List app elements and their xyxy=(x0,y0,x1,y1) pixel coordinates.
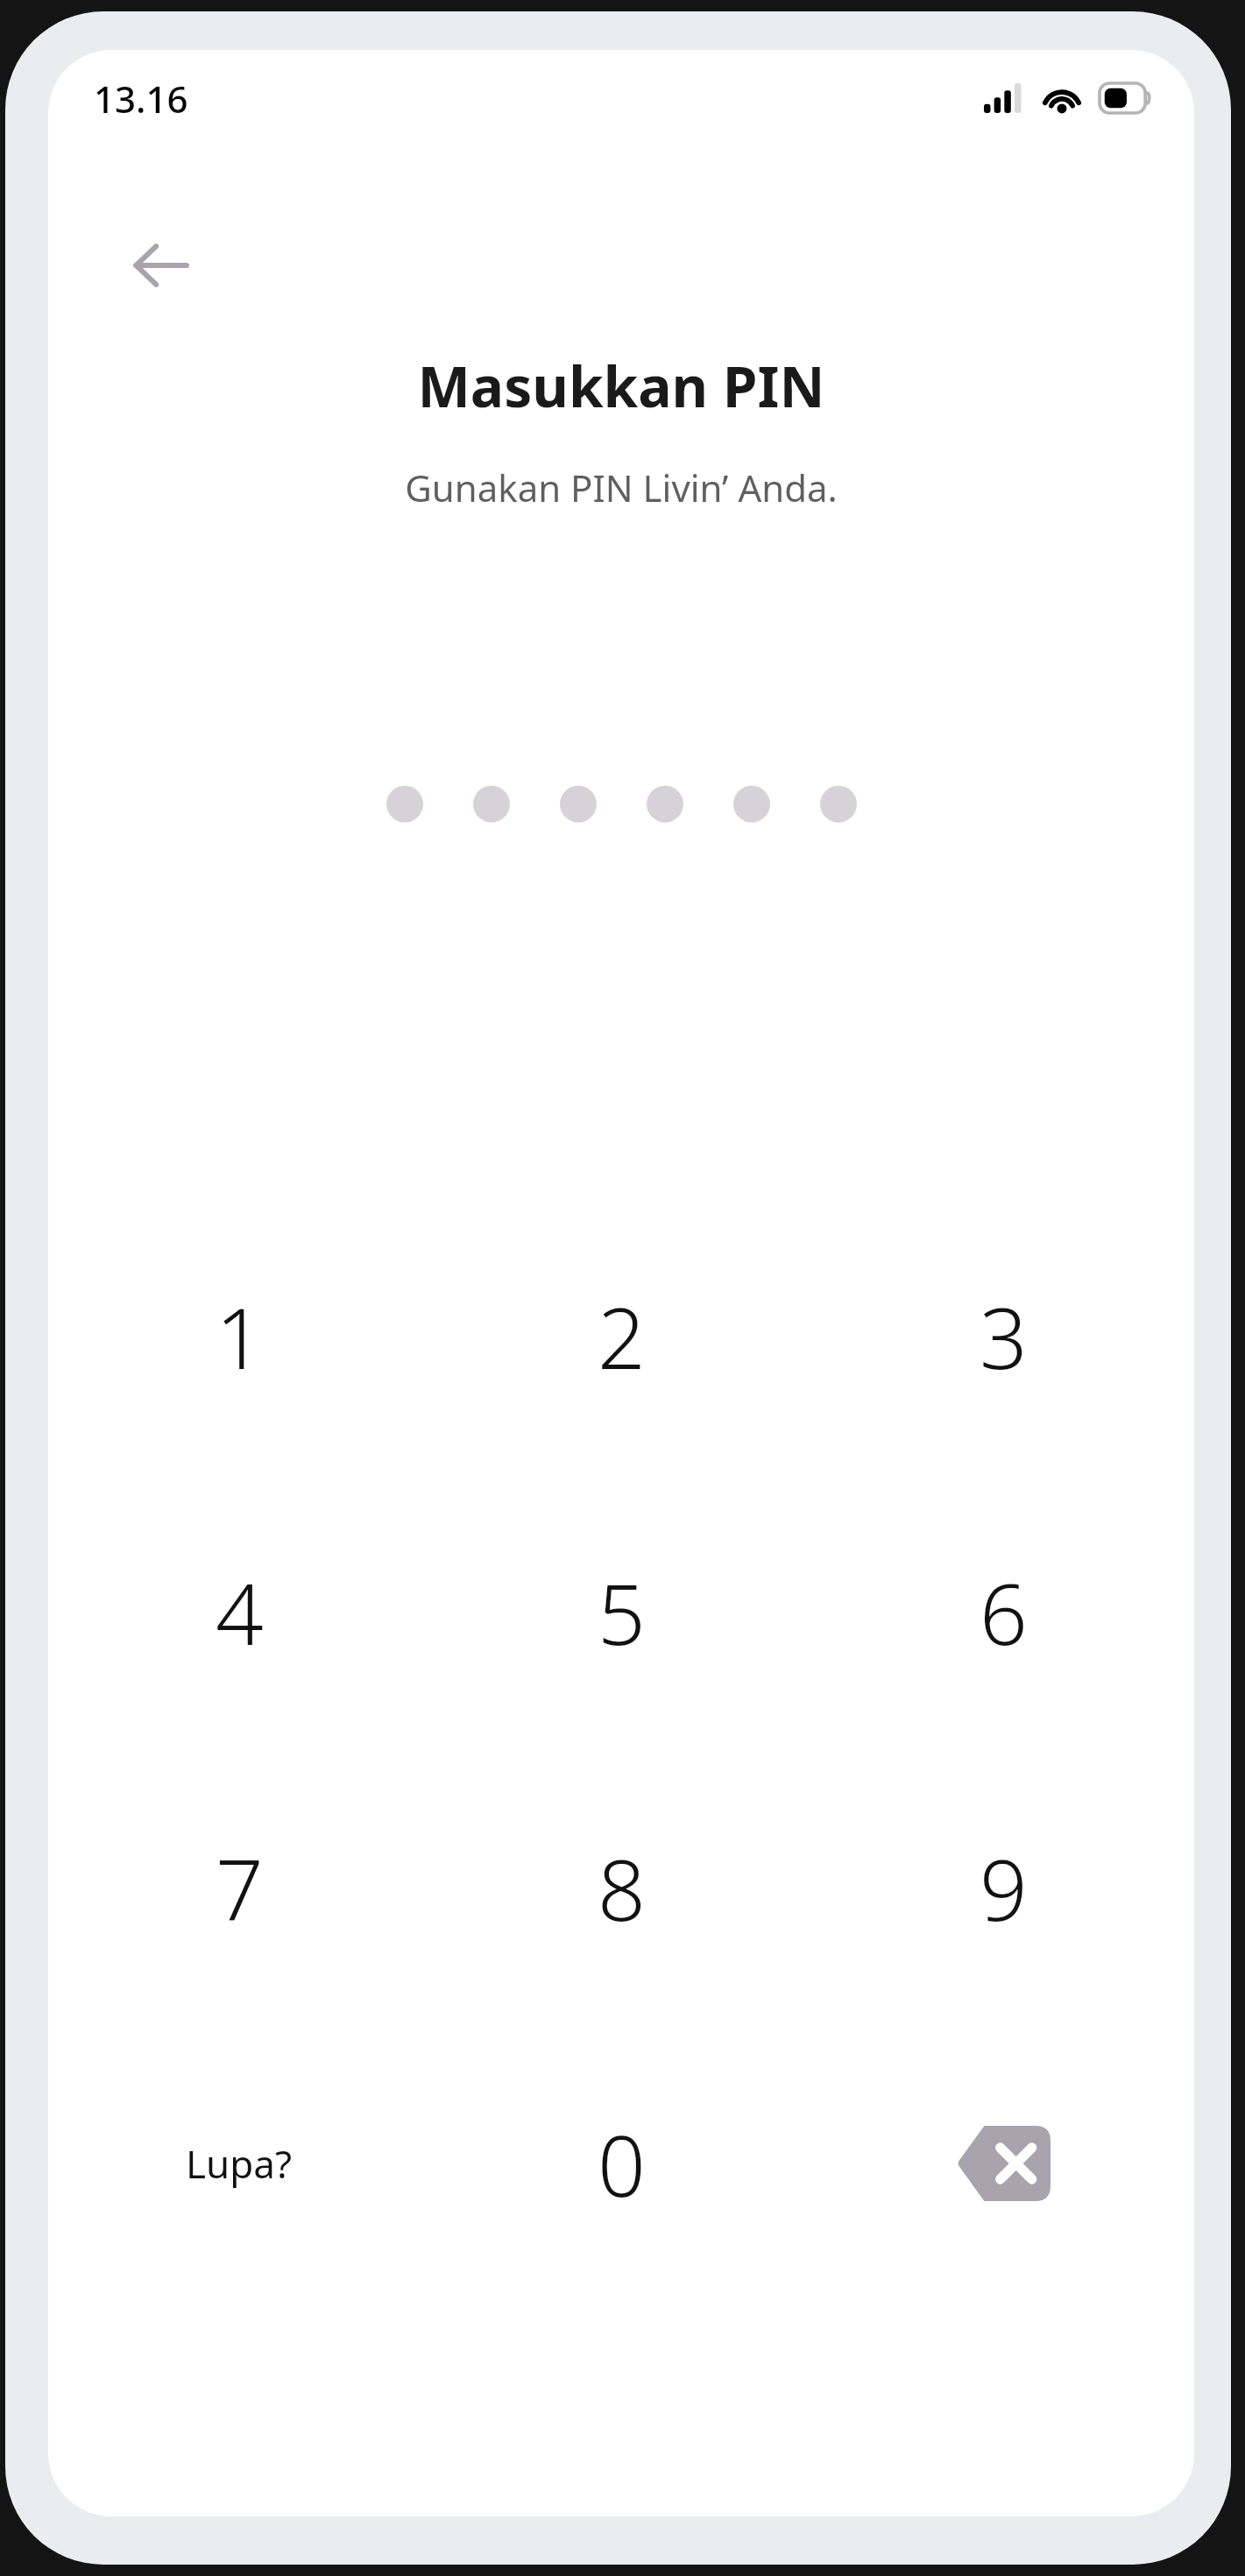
staticText: 1 xyxy=(216,1279,264,1394)
button[interactable]: 4 xyxy=(152,1524,327,1699)
button[interactable]: 6 xyxy=(916,1524,1091,1699)
staticText: 4 xyxy=(216,1555,264,1669)
staticText: 9 xyxy=(980,1831,1028,1945)
staticText: 2 xyxy=(598,1279,646,1394)
button[interactable]: 5 xyxy=(534,1524,709,1699)
button[interactable]: 2 xyxy=(534,1248,709,1423)
button[interactable]: Lupa? xyxy=(152,2102,327,2225)
button[interactable]: 8 xyxy=(534,1800,709,1975)
button[interactable]: 1 xyxy=(152,1248,327,1423)
staticText: Lupa? xyxy=(186,2137,293,2190)
staticText: 8 xyxy=(598,1831,646,1945)
button[interactable]: 3 xyxy=(916,1248,1091,1423)
button[interactable]: Back xyxy=(106,211,215,320)
staticText: Masukkan PIN xyxy=(417,348,825,424)
button[interactable]: Backspace xyxy=(916,2076,1091,2251)
staticText: 7 xyxy=(216,1831,264,1945)
button[interactable]: 7 xyxy=(152,1800,327,1975)
staticText: 0 xyxy=(598,2107,646,2221)
button[interactable]: 9 xyxy=(916,1800,1091,1975)
staticText: 5 xyxy=(598,1555,646,1669)
staticText: 13.16 xyxy=(94,74,188,124)
staticText: Gunakan PIN Livin’ Anda. xyxy=(405,462,838,512)
staticText: 3 xyxy=(980,1279,1028,1394)
staticText: 6 xyxy=(980,1555,1028,1669)
button[interactable]: 0 xyxy=(534,2076,709,2251)
